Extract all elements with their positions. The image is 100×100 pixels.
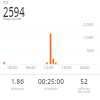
button[interactable]: 52 bbox=[67, 77, 100, 94]
staticText: 18:00 bbox=[61, 65, 72, 70]
staticText: calories burned bbox=[78, 86, 90, 94]
staticText: 2,000 bbox=[83, 22, 94, 27]
button[interactable]: 1.86 bbox=[0, 77, 34, 90]
staticText: 12:00 bbox=[43, 65, 54, 70]
staticText: 52 bbox=[80, 77, 88, 86]
staticText: 1,000 bbox=[83, 35, 94, 40]
staticText: 00:25:00 bbox=[38, 77, 64, 86]
staticText: 2594 bbox=[3, 3, 25, 21]
button[interactable]: 00:25:00 bbox=[34, 77, 67, 90]
staticText: 1.86 bbox=[11, 77, 24, 86]
staticText: Step count bbox=[3, 16, 22, 21]
staticText: 06:00 bbox=[25, 65, 36, 70]
staticText: s bbox=[23, 12, 25, 17]
staticText: distance bbox=[11, 86, 24, 90]
staticText: duration bbox=[44, 86, 58, 90]
staticText: 500 bbox=[87, 48, 94, 53]
staticText: TO bbox=[3, 0, 9, 5]
staticText: 00:00 bbox=[7, 65, 18, 70]
staticText: 24:00 bbox=[79, 65, 90, 70]
